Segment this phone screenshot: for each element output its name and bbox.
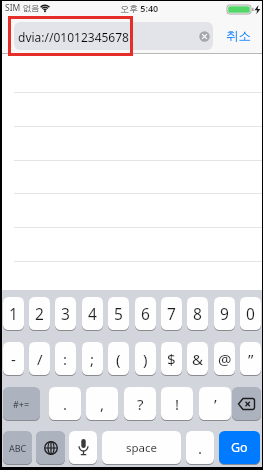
staticText: .: [198, 438, 203, 458]
button[interactable]: ’: [199, 387, 231, 420]
button[interactable]: 1: [3, 297, 24, 330]
staticText: ): [143, 349, 148, 369]
button[interactable]: $: [161, 342, 182, 375]
staticText: @: [218, 349, 232, 369]
button[interactable]: @: [214, 342, 235, 375]
staticText: ;: [90, 349, 95, 369]
staticText: 4: [88, 303, 97, 324]
button[interactable]: 9: [214, 297, 235, 330]
button[interactable]: ABC: [3, 431, 32, 464]
button[interactable]: ): [135, 342, 156, 375]
staticText: :: [63, 349, 68, 369]
button[interactable]: space: [102, 431, 181, 464]
staticText: 2: [35, 303, 44, 324]
button[interactable]: /: [29, 342, 50, 375]
staticText: ?: [137, 394, 144, 414]
staticText: 취소: [226, 28, 251, 44]
staticText: dvia://01012345678: [18, 29, 129, 45]
staticText: !: [175, 394, 180, 414]
button[interactable]: [36, 431, 65, 464]
button[interactable]: [232, 387, 261, 420]
staticText: 8: [193, 303, 202, 324]
button[interactable]: 취소: [226, 28, 251, 44]
button[interactable]: 2: [29, 297, 50, 330]
staticText: .: [63, 394, 68, 414]
staticText: -: [11, 349, 16, 369]
button[interactable]: 4: [82, 297, 103, 330]
staticText: Go: [231, 439, 248, 456]
button[interactable]: dvia://01012345678: [14, 22, 213, 50]
button[interactable]: ”: [240, 342, 261, 375]
button[interactable]: #+=: [3, 387, 40, 420]
staticText: /: [37, 349, 43, 369]
button[interactable]: [69, 431, 97, 464]
staticText: (: [116, 349, 121, 369]
staticText: 1: [9, 303, 18, 324]
staticText: ”: [248, 349, 254, 369]
button[interactable]: :: [55, 342, 76, 375]
button[interactable]: .: [49, 387, 81, 420]
button[interactable]: 8: [187, 297, 208, 330]
button[interactable]: ?: [124, 387, 156, 420]
button[interactable]: 5: [108, 297, 129, 330]
button[interactable]: 3: [55, 297, 76, 330]
button[interactable]: .: [186, 431, 214, 464]
staticText: SIM 없음: [5, 2, 40, 14]
staticText: ’: [214, 394, 217, 414]
button[interactable]: &: [187, 342, 208, 375]
button[interactable]: ,: [86, 387, 118, 420]
staticText: 6: [141, 303, 150, 324]
staticText: 3: [61, 303, 70, 324]
staticText: ABC: [9, 442, 27, 454]
button[interactable]: Go: [219, 431, 260, 464]
button[interactable]: (: [108, 342, 129, 375]
staticText: 0: [246, 303, 255, 324]
staticText: 오후 5:40: [120, 2, 159, 14]
button[interactable]: 6: [135, 297, 156, 330]
button[interactable]: 7: [161, 297, 182, 330]
staticText: 7: [167, 303, 176, 324]
staticText: ,: [100, 394, 105, 414]
staticText: space: [126, 440, 158, 456]
button[interactable]: ;: [82, 342, 103, 375]
staticText: &: [192, 349, 203, 369]
staticText: 5: [114, 303, 123, 324]
button[interactable]: 0: [240, 297, 261, 330]
staticText: 9: [220, 303, 229, 324]
staticText: #+=: [13, 398, 30, 410]
staticText: $: [167, 349, 176, 369]
button[interactable]: -: [3, 342, 24, 375]
button[interactable]: !: [161, 387, 193, 420]
